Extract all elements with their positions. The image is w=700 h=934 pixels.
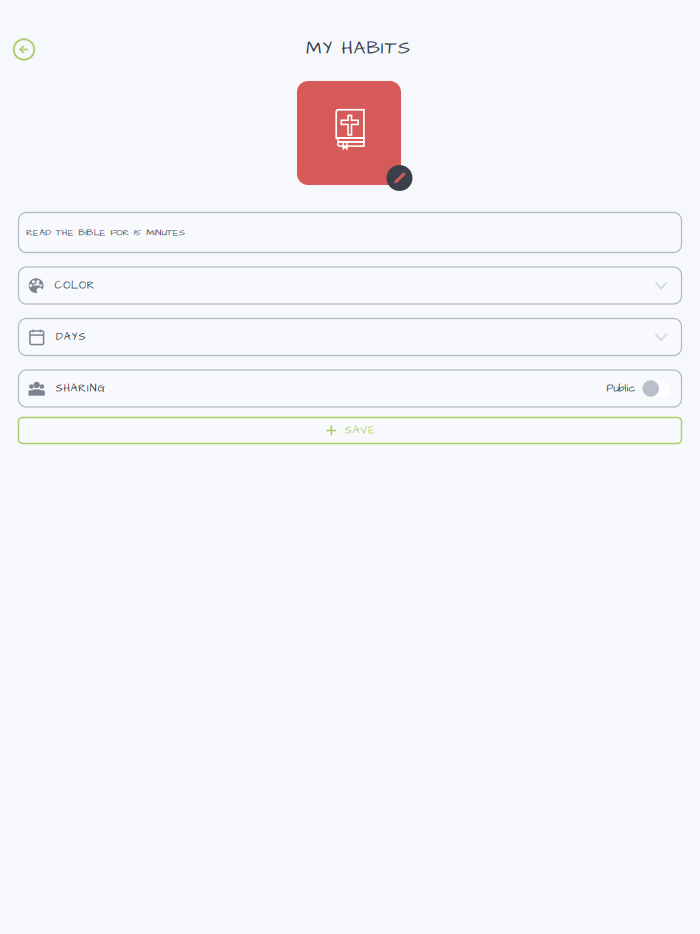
staticText: DAYS: [56, 330, 85, 344]
staticText: SHARING: [56, 381, 105, 396]
staticText: Public: [606, 381, 635, 396]
button[interactable]: SHARING: [18, 370, 681, 407]
staticText: READ THE BIBLE FOR 15 MINUTES: [26, 226, 185, 239]
button[interactable]: COLOR: [18, 267, 681, 304]
button[interactable]: SAVE: [18, 417, 681, 443]
staticText: MY HABITS: [306, 35, 410, 61]
staticText: COLOR: [54, 278, 95, 293]
button[interactable]: Back: [11, 36, 37, 62]
staticText: SAVE: [345, 423, 374, 438]
button[interactable]: Edit habit icon: [386, 165, 412, 191]
button[interactable]: DAYS: [18, 318, 681, 355]
